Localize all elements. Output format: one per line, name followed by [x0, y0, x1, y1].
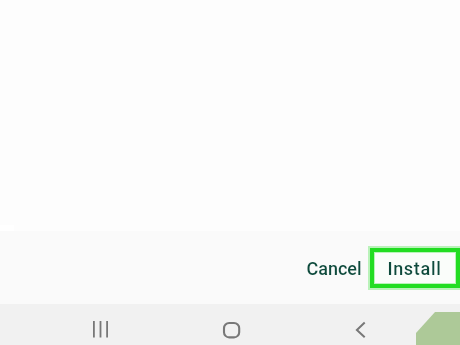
button[interactable]: Cancel: [294, 250, 374, 286]
button[interactable]: Recent apps: [78, 309, 124, 345]
button[interactable]: Install: [370, 248, 460, 288]
staticText: Cancel: [306, 258, 362, 279]
staticText: Install: [387, 258, 442, 279]
button[interactable]: Home: [208, 310, 254, 345]
button[interactable]: Back: [341, 310, 387, 345]
